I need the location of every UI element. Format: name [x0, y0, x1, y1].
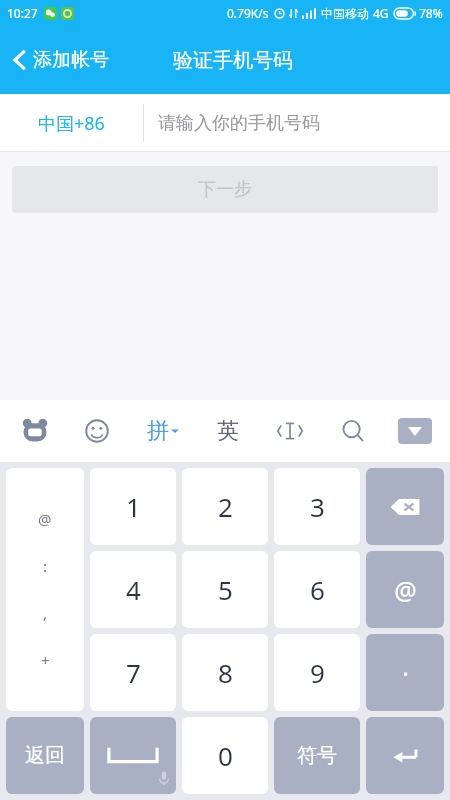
button[interactable]: 搜索 [336, 414, 370, 448]
staticText: 1 [126, 489, 141, 524]
button[interactable]: 返回 [6, 717, 84, 794]
staticText: 0.79K/s [227, 5, 269, 21]
button[interactable]: 8 [182, 634, 268, 711]
button[interactable]: 2 [182, 468, 268, 545]
staticText: 4G [373, 5, 389, 21]
staticText: · [402, 656, 409, 690]
staticText: 78% [419, 5, 443, 21]
staticText: 英 [217, 417, 239, 445]
staticText: 4 [126, 572, 141, 607]
button[interactable]: 拼 [143, 413, 183, 449]
staticText: 验证手机号码 [173, 48, 293, 73]
button[interactable]: 符号 @ : , + [6, 468, 84, 711]
staticText: 中国移动 [321, 6, 369, 21]
staticText: 2 [218, 489, 233, 524]
staticText: 8 [218, 655, 233, 690]
staticText: @ [394, 573, 417, 607]
button[interactable]: · [366, 634, 444, 711]
staticText: 5 [218, 572, 233, 607]
button[interactable]: 表情 [80, 414, 114, 448]
button[interactable]: 请输入你的手机号码 [144, 94, 450, 152]
staticText: @ [38, 509, 52, 529]
button[interactable]: 返回 添加帐号 [0, 26, 119, 94]
button[interactable]: 百度输入法 [18, 414, 52, 448]
staticText: : [43, 556, 48, 576]
staticText: 0 [218, 738, 233, 773]
button[interactable]: 0 [182, 717, 268, 794]
button[interactable]: 5 [182, 551, 268, 628]
button[interactable]: 收起键盘 [398, 418, 432, 444]
button[interactable]: 空格 [90, 717, 176, 794]
staticText: 拼 [147, 417, 169, 445]
button[interactable]: @ [366, 551, 444, 628]
button[interactable]: 9 [274, 634, 360, 711]
button[interactable]: 光标移动 [273, 414, 307, 448]
staticText: 符号 [297, 743, 337, 768]
button[interactable]: 3 [274, 468, 360, 545]
button[interactable]: 回车 [366, 717, 444, 794]
staticText: + [41, 650, 50, 670]
button[interactable]: 7 [90, 634, 176, 711]
staticText: 7 [126, 655, 141, 690]
button[interactable]: 6 [274, 551, 360, 628]
staticText: 请输入你的手机号码 [158, 112, 320, 135]
staticText: 中国+86 [38, 111, 105, 136]
button[interactable]: 1 [90, 468, 176, 545]
staticText: 3 [310, 489, 325, 524]
button[interactable]: 英 [211, 414, 245, 448]
staticText: 10:27 [7, 5, 38, 21]
staticText: 下一步 [198, 178, 252, 201]
staticText: 9 [310, 655, 325, 690]
staticText: 返回 [25, 743, 65, 768]
staticText: 添加帐号 [33, 48, 109, 72]
staticText: , [43, 603, 48, 623]
button[interactable]: 中国+86 [0, 94, 143, 152]
staticText: 6 [310, 572, 325, 607]
button[interactable]: 4 [90, 551, 176, 628]
button[interactable]: 删除 [366, 468, 444, 545]
button[interactable]: 符号 [274, 717, 360, 794]
